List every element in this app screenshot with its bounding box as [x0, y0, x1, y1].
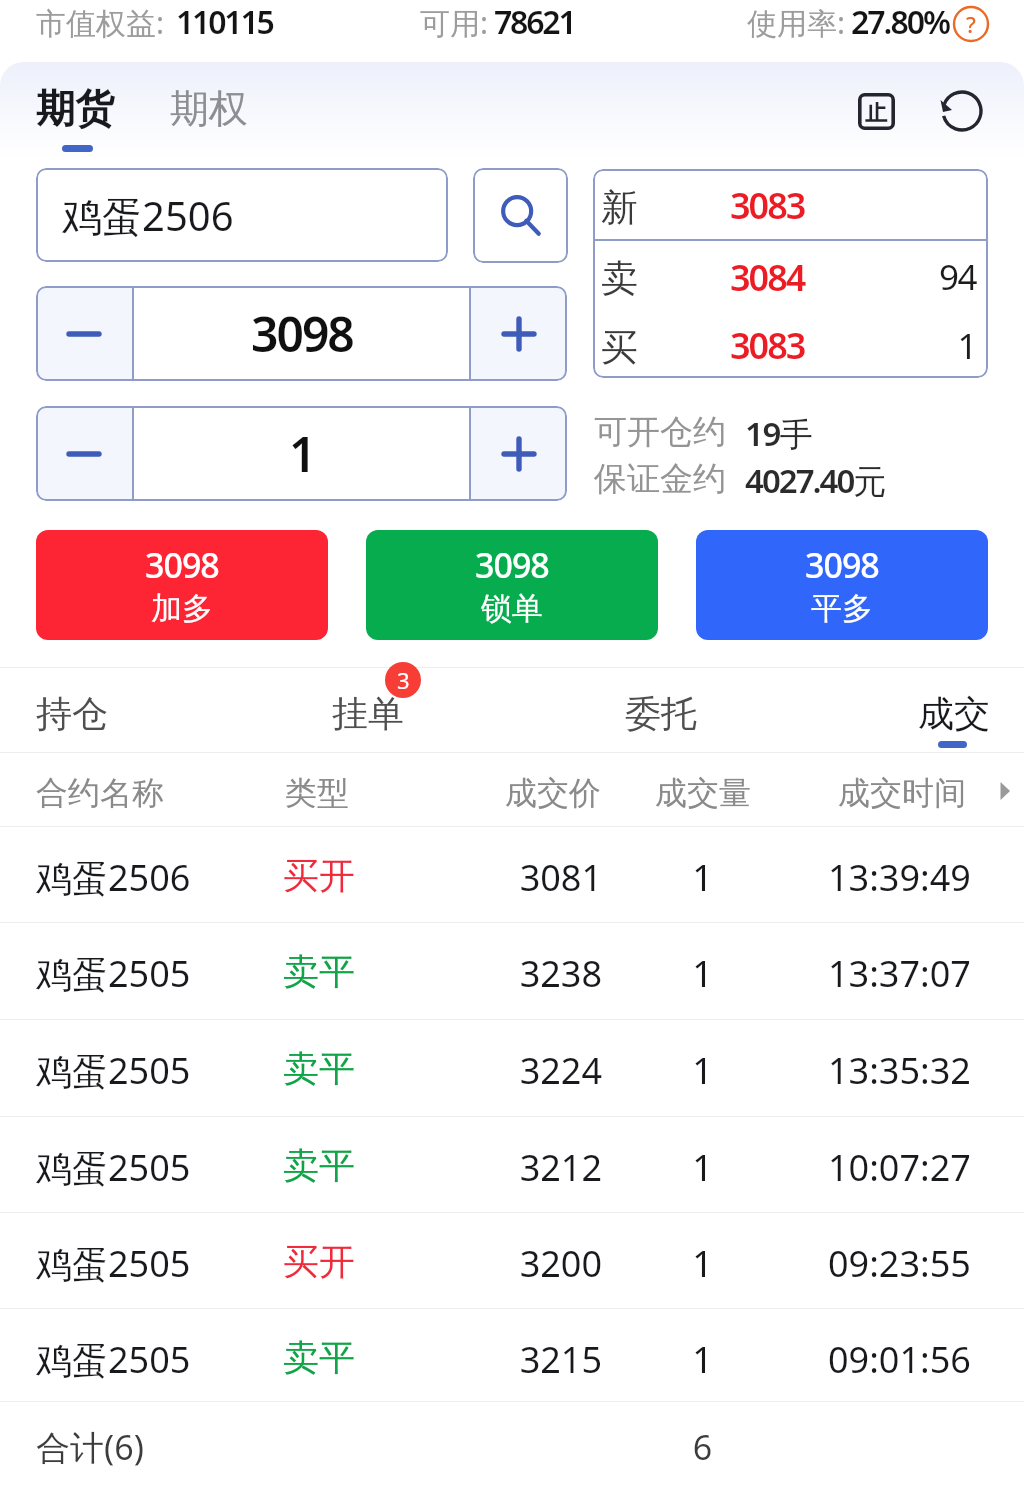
- staticText: 1: [655, 1239, 750, 1288]
- staticText: 3238: [490, 949, 602, 998]
- staticText: 使用率:: [747, 2, 846, 43]
- staticText: 期权: [170, 84, 248, 133]
- button[interactable]: Help: [950, 3, 992, 45]
- staticText: 6: [655, 1424, 750, 1470]
- staticText: 13:37:07: [828, 949, 971, 998]
- button[interactable]: 成交: [892, 660, 1014, 752]
- staticText: 鸡蛋2505: [36, 1239, 191, 1288]
- staticText: 3098: [475, 542, 549, 588]
- staticText: 类型: [285, 773, 349, 813]
- staticText: 可开仓约: [594, 411, 726, 453]
- staticText: 09:23:55: [828, 1239, 971, 1288]
- button[interactable]: Decrease: [36, 286, 132, 381]
- staticText: 鸡蛋2505: [36, 1046, 191, 1095]
- staticText: 3215: [490, 1335, 602, 1384]
- staticText: 94: [833, 253, 976, 301]
- staticText: 1: [655, 1143, 750, 1192]
- staticText: 1: [655, 853, 750, 902]
- staticText: 卖: [601, 255, 638, 302]
- staticText: 4027.40元: [745, 458, 885, 503]
- button[interactable]: 3098: [696, 530, 988, 640]
- staticText: 新: [601, 184, 638, 231]
- staticText: 鸡蛋2505: [36, 1335, 191, 1384]
- staticText: 1: [655, 1046, 750, 1095]
- staticText: 买: [601, 324, 638, 371]
- staticText: 委托: [625, 691, 697, 736]
- button[interactable]: 期权: [170, 84, 248, 133]
- staticText: 3098: [145, 542, 219, 588]
- staticText: 锁单: [481, 589, 543, 628]
- staticText: 1: [655, 1335, 750, 1384]
- staticText: 成交量: [655, 773, 751, 813]
- staticText: 保证金约: [594, 458, 726, 500]
- button[interactable]: Search: [473, 168, 568, 263]
- staticText: 成交: [918, 691, 990, 736]
- staticText: 1: [289, 421, 315, 486]
- staticText: 3224: [490, 1046, 602, 1095]
- staticText: 鸡蛋2506: [62, 188, 234, 243]
- button[interactable]: 3098: [36, 530, 328, 640]
- button[interactable]: 3098: [366, 530, 658, 640]
- staticText: 鸡蛋2505: [36, 949, 191, 998]
- button[interactable]: 委托: [599, 660, 721, 752]
- staticText: 平多: [811, 589, 873, 628]
- staticText: 09:01:56: [828, 1335, 971, 1384]
- staticText: 卖平: [283, 949, 355, 994]
- staticText: 挂单: [332, 691, 404, 736]
- staticText: 成交时间: [838, 773, 966, 813]
- staticText: 3083: [730, 321, 805, 370]
- button[interactable]: 期货: [36, 84, 114, 133]
- staticText: 1: [833, 322, 976, 370]
- staticText: 3200: [490, 1239, 602, 1288]
- staticText: 3083: [730, 181, 805, 230]
- staticText: 19手: [745, 411, 812, 456]
- staticText: 27.80%: [851, 0, 950, 44]
- button[interactable]: 鸡蛋2506: [36, 168, 448, 262]
- staticText: 78621: [494, 0, 575, 44]
- button[interactable]: Increase: [471, 406, 567, 501]
- button[interactable]: 挂单: [306, 660, 428, 752]
- button[interactable]: Conditional order: [846, 81, 906, 141]
- staticText: 加多: [151, 589, 213, 628]
- staticText: 13:39:49: [828, 853, 971, 902]
- staticText: 买开: [283, 1239, 355, 1284]
- button[interactable]: Decrease: [36, 406, 132, 501]
- staticText: 3081: [490, 853, 602, 902]
- staticText: ?: [966, 9, 976, 39]
- staticText: 可用:: [420, 2, 489, 43]
- staticText: 3212: [490, 1143, 602, 1192]
- staticText: 卖平: [283, 1046, 355, 1091]
- button[interactable]: 鸡蛋2505: [0, 1308, 1024, 1402]
- button[interactable]: 鸡蛋2505: [0, 1212, 1024, 1309]
- button[interactable]: Increase: [471, 286, 567, 381]
- button[interactable]: 鸡蛋2505: [0, 1019, 1024, 1117]
- button[interactable]: 鸡蛋2505: [0, 922, 1024, 1020]
- staticText: 10:07:27: [828, 1143, 971, 1192]
- staticText: 鸡蛋2506: [36, 853, 191, 902]
- button[interactable]: 鸡蛋2505: [0, 1116, 1024, 1213]
- staticText: 卖平: [283, 1143, 355, 1188]
- staticText: 期货: [36, 84, 114, 133]
- staticText: 110115: [176, 0, 273, 44]
- button[interactable]: Refresh: [932, 81, 992, 141]
- staticText: 1: [655, 949, 750, 998]
- staticText: 鸡蛋2505: [36, 1143, 191, 1192]
- staticText: 买开: [283, 853, 355, 898]
- button[interactable]: 持仓: [10, 660, 132, 752]
- staticText: 合计(6): [36, 1424, 144, 1470]
- staticText: 13:35:32: [828, 1046, 971, 1095]
- staticText: 市值权益:: [36, 2, 165, 43]
- staticText: 3: [397, 665, 410, 695]
- staticText: 卖平: [283, 1335, 355, 1380]
- staticText: 3084: [730, 253, 805, 302]
- staticText: 3098: [251, 301, 353, 366]
- staticText: 持仓: [36, 691, 108, 736]
- staticText: 合约名称: [36, 773, 164, 813]
- button[interactable]: 鸡蛋2506: [0, 826, 1024, 923]
- staticText: 成交价: [505, 773, 601, 813]
- staticText: 3098: [805, 542, 879, 588]
